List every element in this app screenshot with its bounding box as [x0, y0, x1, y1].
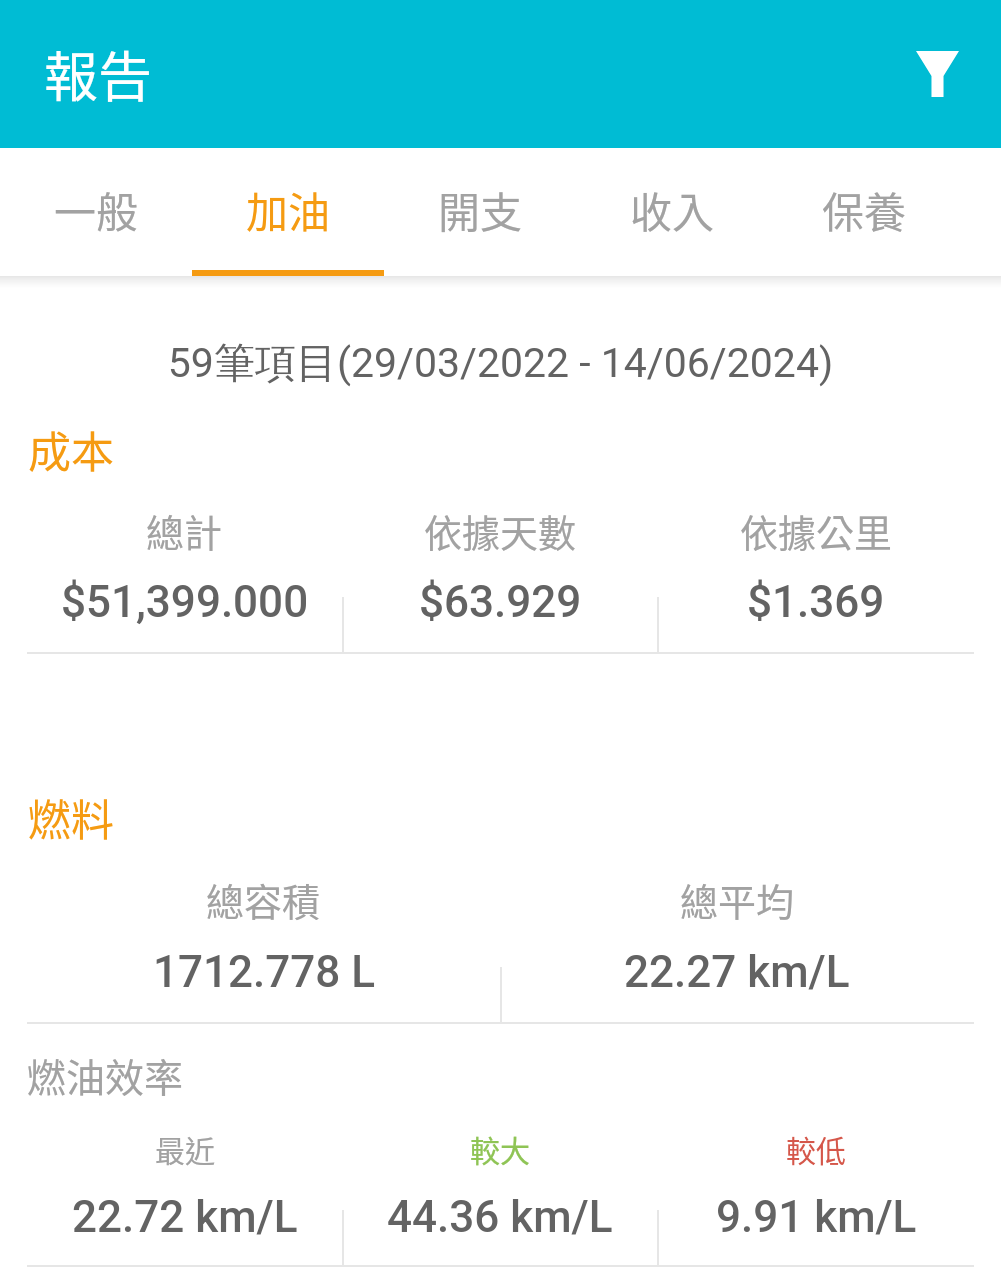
staticText: 最近 [155, 1127, 215, 1170]
staticText: 依據公里 [740, 503, 893, 558]
staticText: 保養 [822, 179, 907, 240]
staticText: $63.929 [419, 576, 582, 628]
staticText: 59筆項目(29/03/2022 - 14/06/2024) [0, 338, 1001, 390]
staticText: $1.369 [747, 576, 885, 628]
staticText: 9.91 km/L [716, 1191, 917, 1243]
staticText: 22.72 km/L [72, 1191, 298, 1243]
staticText: 燃油效率 [27, 1047, 184, 1103]
staticText: 一般 [54, 179, 139, 240]
staticText: $51,399.000 [61, 576, 309, 628]
staticText: 開支 [438, 179, 523, 240]
button[interactable]: 收入 [576, 148, 768, 277]
staticText: 44.36 km/L [387, 1191, 613, 1243]
button[interactable]: 一般 [0, 148, 192, 277]
staticText: 依據天數 [424, 503, 577, 558]
staticText: 22.27 km/L [624, 946, 850, 998]
staticText: 報告 [44, 34, 152, 112]
button[interactable]: 加油 [192, 148, 384, 277]
staticText: 燃料 [28, 786, 114, 848]
staticText: 總平均 [680, 872, 795, 927]
staticText: 收入 [630, 179, 715, 240]
staticText: 成本 [28, 418, 114, 480]
button[interactable]: 保養 [768, 148, 960, 277]
staticText: 較大 [470, 1127, 530, 1170]
button[interactable]: Filter [889, 26, 985, 122]
staticText: 加油 [246, 179, 331, 240]
staticText: 1712.778 L [153, 946, 375, 998]
button[interactable]: 開支 [384, 148, 576, 277]
staticText: 總計 [146, 503, 223, 558]
staticText: 較低 [786, 1127, 846, 1170]
staticText: 總容積 [206, 872, 321, 927]
